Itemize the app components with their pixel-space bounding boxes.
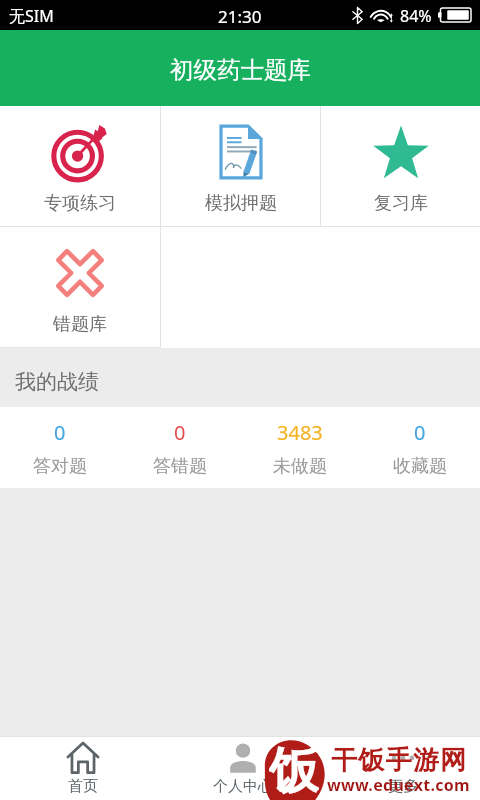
button[interactable]: More [320, 737, 480, 800]
staticText: 未做题 [273, 455, 327, 478]
staticText: 初级药士题库 [170, 55, 311, 85]
staticText: 21:30 [218, 5, 262, 28]
button[interactable]: 3483 [240, 407, 360, 488]
button[interactable]: Profile [160, 737, 320, 800]
staticText: 0 [414, 419, 426, 446]
button[interactable]: 专项练习 [0, 106, 160, 226]
staticText: www.eduext.com [327, 774, 470, 796]
staticText: 首页 [68, 777, 98, 796]
staticText: 无SIM [9, 5, 54, 27]
staticText: 更多 [388, 777, 418, 796]
staticText: 干饭手游网 [331, 744, 468, 777]
staticText: 3483 [277, 419, 323, 446]
staticText: 复习库 [374, 192, 428, 215]
staticText: 模拟押题 [205, 192, 277, 215]
staticText: 答错题 [153, 455, 207, 478]
staticText: 收藏题 [393, 455, 447, 478]
button[interactable]: Home [0, 737, 160, 800]
staticText: 0 [54, 419, 66, 446]
button[interactable]: 0 [120, 407, 240, 488]
button[interactable]: 0 [360, 407, 480, 488]
button[interactable]: 错题库 [0, 227, 160, 348]
staticText: 错题库 [53, 313, 107, 336]
button[interactable]: 模拟押题 [161, 106, 320, 226]
button[interactable]: 复习库 [321, 106, 480, 226]
staticText: 答对题 [33, 455, 87, 478]
button[interactable]: 0 [0, 407, 120, 488]
staticText: 0 [174, 419, 186, 446]
staticText: 饭 [269, 740, 319, 800]
staticText: 我的战绩 [15, 369, 99, 395]
staticText: 专项练习 [44, 192, 116, 215]
staticText: 个人中心 [213, 777, 273, 796]
staticText: 84% [400, 5, 432, 27]
